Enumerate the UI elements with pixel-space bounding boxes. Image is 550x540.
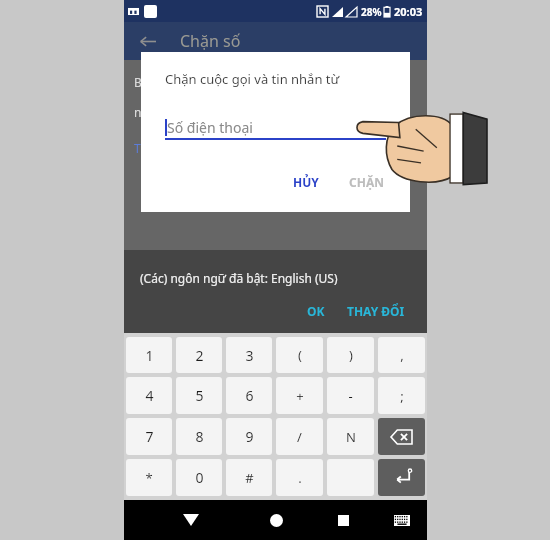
staticText: 20:03	[394, 4, 423, 19]
staticText: N	[346, 428, 356, 446]
staticText: #	[245, 469, 254, 487]
staticText: HỦY	[293, 174, 319, 190]
button[interactable]: ,	[378, 337, 425, 373]
button[interactable]: 5	[176, 377, 222, 414]
button[interactable]: #	[226, 459, 272, 496]
staticText: 4	[145, 386, 154, 405]
button[interactable]: OK	[299, 299, 333, 323]
button[interactable]: 1	[126, 337, 172, 373]
staticText: /	[297, 428, 302, 446]
button[interactable]: Recents	[326, 503, 360, 537]
staticText: +	[296, 387, 304, 405]
button[interactable]: Backspace	[378, 418, 425, 455]
staticText: 6	[245, 386, 254, 405]
button[interactable]: 4	[126, 377, 172, 414]
button[interactable]: 8	[176, 418, 222, 455]
button[interactable]: Back	[174, 503, 208, 537]
button[interactable]: ;	[378, 377, 425, 414]
button[interactable]: Số điện thoại	[165, 114, 386, 140]
button[interactable]: HỦY	[283, 168, 329, 196]
staticText: ,	[400, 346, 404, 364]
button[interactable]: -	[327, 377, 374, 414]
staticText: 3	[245, 346, 254, 365]
button[interactable]: )	[327, 337, 374, 373]
button[interactable]: 0	[176, 459, 222, 496]
staticText: (	[298, 346, 302, 364]
staticText: CHẶN	[349, 174, 384, 190]
staticText: (Các) ngôn ngữ đã bật: English (US)	[140, 270, 338, 286]
button[interactable]: /	[276, 418, 323, 455]
staticText: B	[134, 74, 142, 90]
button[interactable]: +	[276, 377, 323, 414]
button[interactable]: Back	[132, 26, 162, 56]
staticText: Chặn cuộc gọi và tin nhắn từ	[165, 70, 340, 88]
staticText: 7	[145, 427, 154, 446]
staticText: *	[145, 469, 153, 487]
button[interactable]: (	[276, 337, 323, 373]
staticText: -	[348, 387, 353, 405]
staticText: THAY ĐỔI	[347, 303, 405, 319]
staticText: 0	[195, 468, 204, 487]
button[interactable]: *	[126, 459, 172, 496]
staticText: 1	[145, 346, 154, 365]
staticText: ;	[400, 387, 404, 405]
button[interactable]: 2	[176, 337, 222, 373]
staticText: 9	[245, 427, 254, 446]
staticText: 8	[195, 427, 204, 446]
staticText: T	[134, 140, 141, 156]
button[interactable]: 6	[226, 377, 272, 414]
staticText: Số điện thoại	[167, 118, 253, 137]
staticText: Chặn số	[180, 30, 241, 52]
staticText: .	[298, 469, 302, 487]
button[interactable]: THAY ĐỔI	[339, 299, 413, 323]
button[interactable]: 9	[226, 418, 272, 455]
staticText: 28%	[361, 5, 382, 19]
staticText: n	[134, 104, 142, 120]
button[interactable]: .	[276, 459, 323, 496]
button[interactable]: Switch keyboard	[387, 505, 417, 535]
button[interactable]: 7	[126, 418, 172, 455]
staticText: OK	[307, 303, 325, 319]
staticText: 2	[195, 346, 204, 365]
button[interactable]: Home	[259, 503, 293, 537]
button[interactable]: 3	[226, 337, 272, 373]
button[interactable]: Enter	[378, 459, 425, 496]
staticText: 5	[195, 386, 204, 405]
staticText: )	[349, 346, 353, 364]
button[interactable]: CHẶN	[339, 168, 394, 196]
button[interactable]: N	[327, 418, 374, 455]
